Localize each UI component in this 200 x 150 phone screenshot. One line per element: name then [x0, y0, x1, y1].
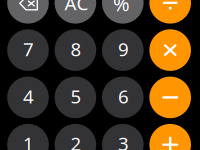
button[interactable]: Multiply	[149, 29, 191, 71]
staticText: 2	[70, 131, 81, 150]
staticText: 5	[70, 84, 81, 109]
button[interactable]: 9	[102, 29, 144, 71]
staticText: AC	[64, 0, 88, 15]
button[interactable]: Divide	[149, 0, 191, 24]
staticText: 8	[70, 36, 81, 61]
staticText: %	[113, 0, 130, 17]
staticText: 1	[23, 131, 34, 150]
staticText: 7	[23, 36, 34, 61]
button[interactable]: 5	[55, 77, 96, 118]
button[interactable]: 7	[7, 29, 49, 71]
staticText: 9	[118, 36, 129, 61]
button[interactable]: 2	[55, 124, 96, 150]
button[interactable]: AC	[55, 0, 96, 24]
staticText: 6	[118, 84, 129, 109]
staticText: 3	[118, 131, 129, 150]
button[interactable]: 3	[102, 124, 144, 150]
button[interactable]: Minus	[149, 77, 191, 118]
button[interactable]: 1	[7, 124, 49, 150]
button[interactable]: %	[102, 0, 144, 24]
staticText: 4	[23, 84, 34, 109]
button[interactable]: 8	[55, 29, 96, 71]
button[interactable]: 6	[102, 77, 144, 118]
button[interactable]: 4	[7, 77, 49, 118]
button[interactable]: Delete	[7, 0, 49, 24]
button[interactable]: Plus	[149, 124, 191, 150]
